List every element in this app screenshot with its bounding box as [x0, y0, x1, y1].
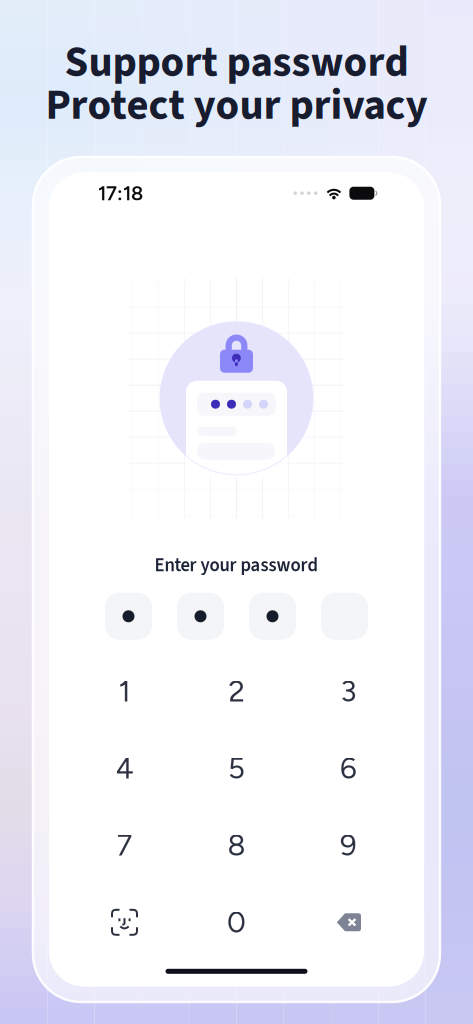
button[interactable]: 0 — [180, 884, 292, 961]
button[interactable]: Delete — [292, 884, 404, 961]
staticText: 6 — [340, 751, 357, 786]
staticText: Support password — [64, 32, 408, 93]
staticText: 9 — [340, 828, 357, 863]
staticText: Protect your privacy — [45, 75, 427, 136]
staticText: 2 — [228, 674, 244, 709]
staticText: 3 — [340, 674, 356, 709]
staticText: Enter your password — [154, 552, 318, 579]
button[interactable]: 6 — [292, 730, 404, 807]
button[interactable]: 2 — [180, 653, 292, 730]
staticText: 1 — [118, 674, 130, 709]
staticText: 17:18 — [98, 181, 143, 205]
button[interactable]: 1 — [68, 653, 180, 730]
button[interactable]: 8 — [180, 807, 292, 884]
staticText: 0 — [227, 905, 246, 940]
button[interactable]: 7 — [68, 807, 180, 884]
staticText: 7 — [116, 828, 132, 863]
button[interactable]: Unlock with Face ID — [68, 884, 180, 961]
button[interactable]: 9 — [292, 807, 404, 884]
staticText: 5 — [228, 751, 245, 786]
button[interactable]: 4 — [68, 730, 180, 807]
button[interactable]: 5 — [180, 730, 292, 807]
staticText: 8 — [227, 828, 245, 863]
staticText: 4 — [115, 751, 133, 786]
button[interactable]: 3 — [292, 653, 404, 730]
